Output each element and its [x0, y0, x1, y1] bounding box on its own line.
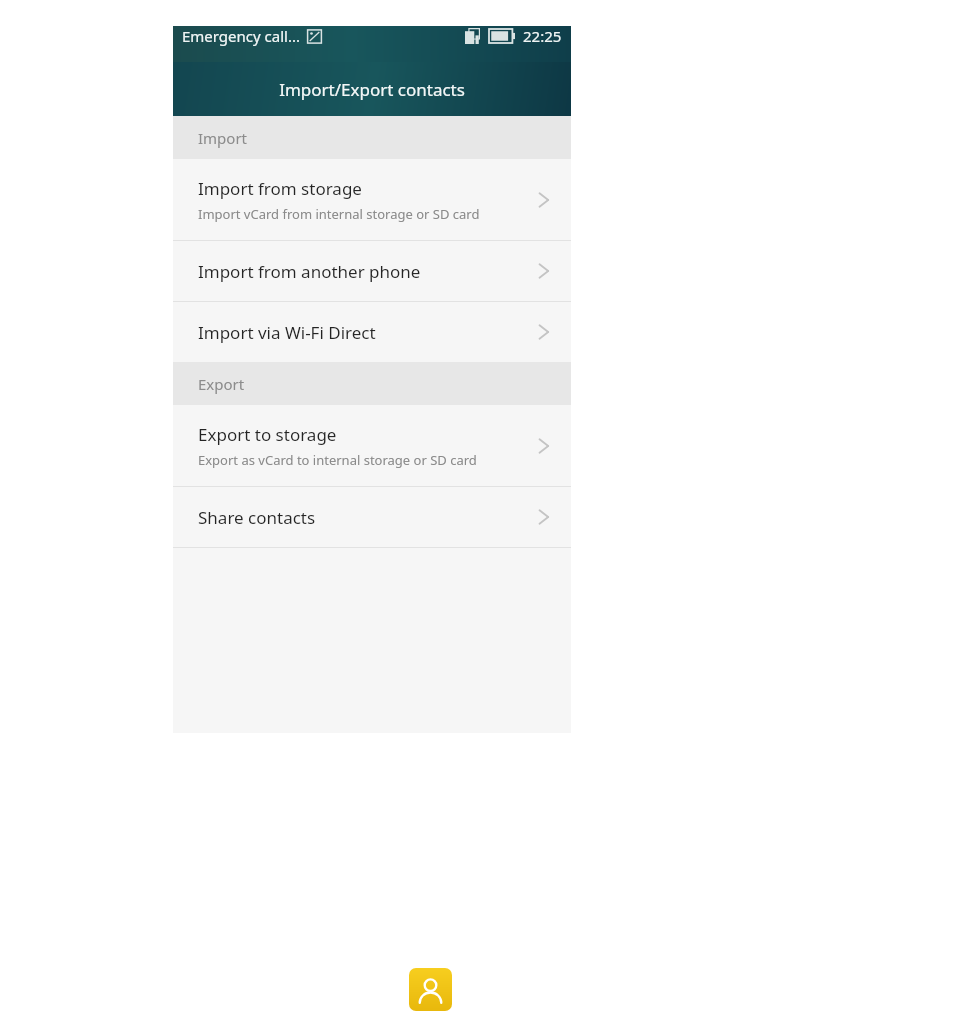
staticText: Share contacts [198, 506, 316, 529]
staticText: Export [198, 374, 245, 394]
staticText: Import/Export contacts [279, 78, 465, 101]
staticText: Import from another phone [198, 260, 421, 283]
button[interactable]: Share contacts [173, 487, 571, 547]
button[interactable]: Import from storage [173, 159, 571, 240]
staticText: Export to storage [198, 423, 337, 446]
button[interactable]: Import via Wi-Fi Direct [173, 302, 571, 362]
button[interactable]: Export to storage [173, 405, 571, 486]
staticText: Import from storage [198, 177, 362, 200]
button[interactable]: Contacts [409, 968, 452, 1011]
staticText: Import [198, 128, 248, 148]
staticText: Import vCard from internal storage or SD… [198, 205, 480, 223]
staticText: Export as vCard to internal storage or S… [198, 451, 477, 469]
staticText: Emergency call... [182, 26, 300, 46]
staticText: Import via Wi-Fi Direct [198, 321, 376, 344]
staticText: 22:25 [523, 26, 562, 46]
button[interactable]: Import from another phone [173, 241, 571, 301]
